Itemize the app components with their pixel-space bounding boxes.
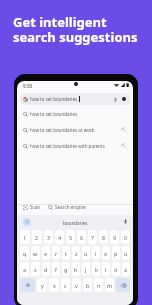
staticText: boundaries xyxy=(63,220,88,226)
staticText: 9:30 xyxy=(23,83,33,89)
staticText: e xyxy=(44,250,48,257)
button[interactable]: how to set boundaries xyxy=(17,106,133,122)
button[interactable]: e xyxy=(42,246,50,260)
button[interactable]: 2 xyxy=(32,230,42,244)
staticText: ö xyxy=(114,266,118,273)
button[interactable]: ö xyxy=(112,262,120,276)
staticText: Scan xyxy=(30,204,41,210)
staticText: j xyxy=(85,266,87,273)
button[interactable]: r xyxy=(52,246,60,260)
button[interactable]: Account xyxy=(122,97,126,101)
button[interactable]: v xyxy=(72,278,81,292)
staticText: w xyxy=(33,250,38,257)
button[interactable]: t xyxy=(62,246,70,260)
button[interactable]: More suggestions xyxy=(23,218,31,226)
staticText: o xyxy=(104,250,108,257)
button[interactable]: g xyxy=(62,262,70,276)
button[interactable]: k xyxy=(92,262,100,276)
button[interactable]: d xyxy=(42,262,50,276)
button[interactable]: w xyxy=(31,246,40,260)
button[interactable]: Shift xyxy=(20,278,35,292)
staticText: z xyxy=(75,250,78,257)
staticText: how to set boundaries xyxy=(30,96,78,102)
staticText: 8 xyxy=(102,234,106,241)
button[interactable]: j xyxy=(82,262,90,276)
button[interactable]: ä xyxy=(122,262,130,276)
button[interactable]: 3 xyxy=(44,230,53,244)
staticText: c xyxy=(64,282,67,289)
button[interactable]: c xyxy=(61,278,70,292)
staticText: r xyxy=(55,250,58,257)
staticText: v xyxy=(75,282,78,289)
button[interactable]: how to set boundaries with parents xyxy=(17,138,133,154)
button[interactable]: 6 xyxy=(77,230,86,244)
staticText: g xyxy=(64,266,68,273)
button[interactable]: Search engine xyxy=(47,204,87,210)
button[interactable]: how to set boundaries at work xyxy=(17,122,133,138)
staticText: 4 xyxy=(58,234,62,241)
staticText: a xyxy=(23,266,27,273)
staticText: 2 xyxy=(35,234,39,241)
button[interactable]: m xyxy=(105,278,114,292)
staticText: Get intelligent search suggestions xyxy=(13,13,138,46)
staticText: i xyxy=(95,250,97,257)
button[interactable]: 4 xyxy=(55,230,64,244)
button[interactable]: x xyxy=(49,278,59,292)
staticText: n xyxy=(97,282,101,289)
button[interactable]: 1 xyxy=(20,230,30,244)
button[interactable]: Backspace xyxy=(116,278,130,292)
button[interactable]: n xyxy=(94,278,103,292)
button[interactable]: q xyxy=(20,246,29,260)
staticText: how to set boundaries with parents xyxy=(30,143,105,149)
staticText: how to set boundaries xyxy=(30,111,78,117)
button[interactable]: p xyxy=(112,246,120,260)
staticText: s xyxy=(34,266,37,273)
button[interactable]: b xyxy=(83,278,92,292)
staticText: 3 xyxy=(47,234,51,241)
button[interactable]: 0 xyxy=(121,230,130,244)
staticText: 1 xyxy=(23,234,27,241)
staticText: d xyxy=(44,266,48,273)
staticText: x xyxy=(53,282,56,289)
staticText: 0 xyxy=(124,234,128,241)
staticText: k xyxy=(95,266,98,273)
staticText: 5 xyxy=(69,234,73,241)
button[interactable]: 9 xyxy=(110,230,119,244)
button[interactable]: ü xyxy=(122,246,130,260)
button[interactable]: o xyxy=(102,246,110,260)
staticText: q xyxy=(23,250,27,257)
button[interactable]: how to set boundaries xyxy=(20,93,131,105)
button[interactable]: f xyxy=(52,262,60,276)
staticText: u xyxy=(84,250,88,257)
staticText: ü xyxy=(124,250,128,257)
button[interactable]: 5 xyxy=(66,230,75,244)
staticText: b xyxy=(86,282,90,289)
staticText: 7 xyxy=(91,234,95,241)
staticText: m xyxy=(107,282,113,289)
button[interactable]: y xyxy=(37,278,47,292)
button[interactable]: u xyxy=(82,246,90,260)
button[interactable]: l xyxy=(102,262,110,276)
staticText: 6 xyxy=(80,234,84,241)
staticText: 9 xyxy=(113,234,117,241)
staticText: l xyxy=(105,266,107,273)
staticText: y xyxy=(41,282,44,289)
button[interactable]: h xyxy=(72,262,80,276)
button[interactable]: 7 xyxy=(88,230,97,244)
button[interactable]: i xyxy=(92,246,100,260)
staticText: t xyxy=(65,250,67,257)
button[interactable]: z xyxy=(72,246,80,260)
button[interactable]: 8 xyxy=(99,230,108,244)
staticText: f xyxy=(55,266,57,273)
staticText: Search engine xyxy=(55,204,86,210)
staticText: how to set boundaries at work xyxy=(30,127,95,133)
staticText: ä xyxy=(124,266,128,273)
button[interactable]: a xyxy=(20,262,29,276)
button[interactable]: s xyxy=(31,262,40,276)
button[interactable]: Scan xyxy=(22,204,42,210)
staticText: h xyxy=(74,266,78,273)
staticText: p xyxy=(114,250,118,257)
